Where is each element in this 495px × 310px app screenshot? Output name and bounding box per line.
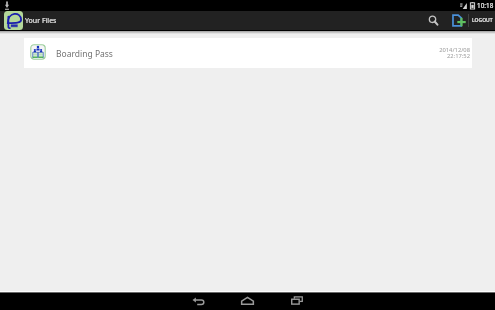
staticText: Boarding Pass <box>56 48 113 60</box>
button[interactable]: Your Files <box>0 11 61 30</box>
staticText: 10:18 <box>477 1 494 10</box>
staticText: 2014/12/08 22:17:52 <box>439 46 470 59</box>
button[interactable]: Search <box>425 11 445 30</box>
button[interactable]: Back <box>174 292 223 309</box>
button[interactable]: Home <box>223 292 272 309</box>
staticText: LOGOUT <box>472 17 493 24</box>
button[interactable]: Boarding Pass <box>24 38 472 68</box>
button[interactable]: Recents <box>272 292 321 309</box>
button[interactable]: New file <box>445 11 468 30</box>
staticText: Your Files <box>25 16 57 26</box>
button[interactable]: LOGOUT <box>469 11 495 30</box>
